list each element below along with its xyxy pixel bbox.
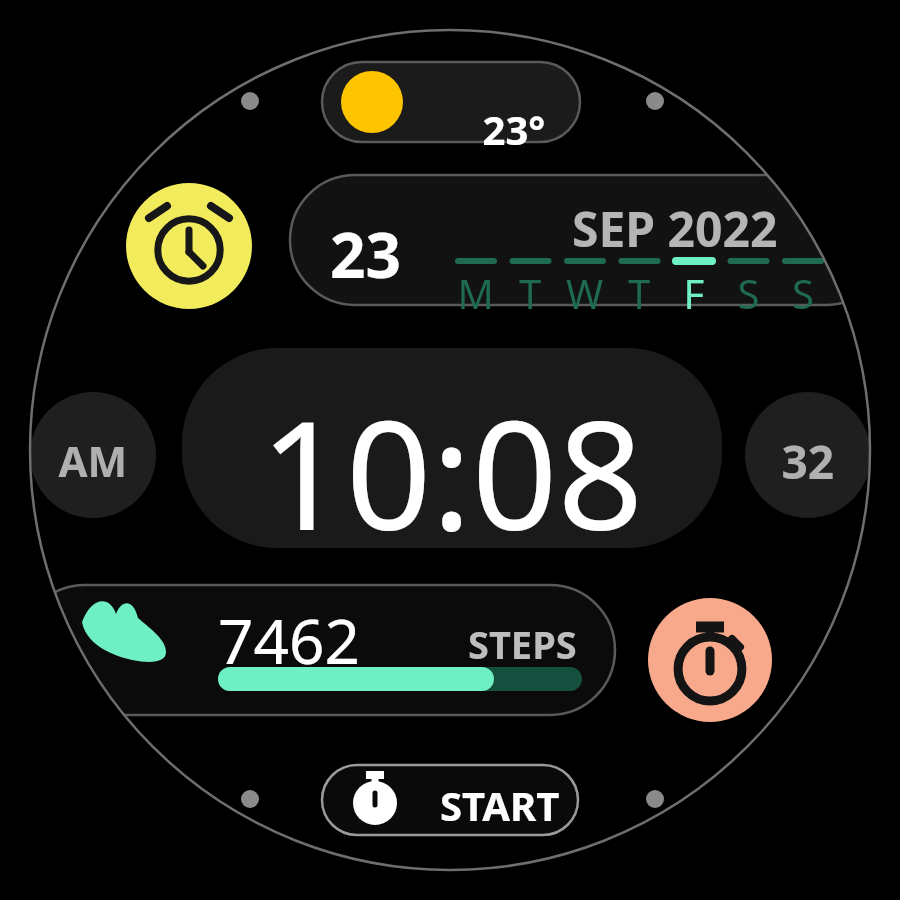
button[interactable]: Date 23 September 2022: [290, 175, 850, 305]
button[interactable]: Time 10:08: [182, 348, 722, 548]
button[interactable]: Weather 23 degrees: [322, 62, 580, 142]
button[interactable]: Alarm: [126, 183, 252, 309]
button[interactable]: Steps 7462: [48, 585, 615, 715]
button[interactable]: Start: [322, 765, 578, 835]
button[interactable]: Stopwatch: [648, 598, 772, 722]
button[interactable]: Seconds 32: [745, 392, 871, 518]
button[interactable]: AM: [30, 392, 156, 518]
